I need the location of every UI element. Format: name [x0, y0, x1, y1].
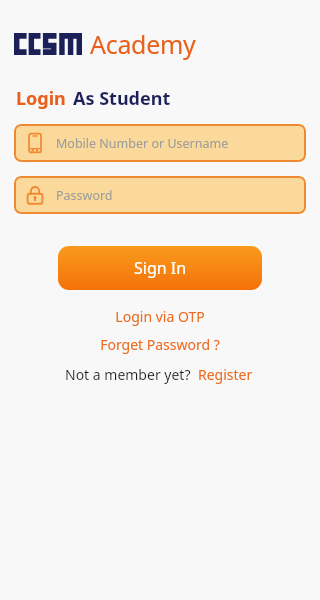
staticText: As Student [73, 86, 171, 111]
staticText: Sign In [134, 257, 187, 279]
staticText: Login [16, 86, 66, 111]
other: HCSM logo [14, 33, 82, 55]
staticText: Forget Password ? [100, 335, 220, 354]
button[interactable]: Sign In [58, 246, 262, 290]
other: Mobile number [25, 133, 45, 153]
button[interactable]: Register [196, 363, 255, 386]
staticText: Login via OTP [115, 307, 205, 326]
staticText: Register [198, 365, 253, 384]
staticText: Password [56, 187, 113, 204]
button[interactable]: Password [14, 176, 306, 214]
button[interactable]: Login via OTP [105, 305, 215, 328]
button[interactable]: Forget Password ? [90, 333, 230, 356]
other: Password [25, 185, 45, 205]
staticText: Mobile Number or Username [56, 135, 229, 152]
button[interactable]: Mobile number [14, 124, 306, 162]
staticText: Academy [90, 27, 196, 61]
staticText: Not a member yet? [65, 365, 191, 384]
